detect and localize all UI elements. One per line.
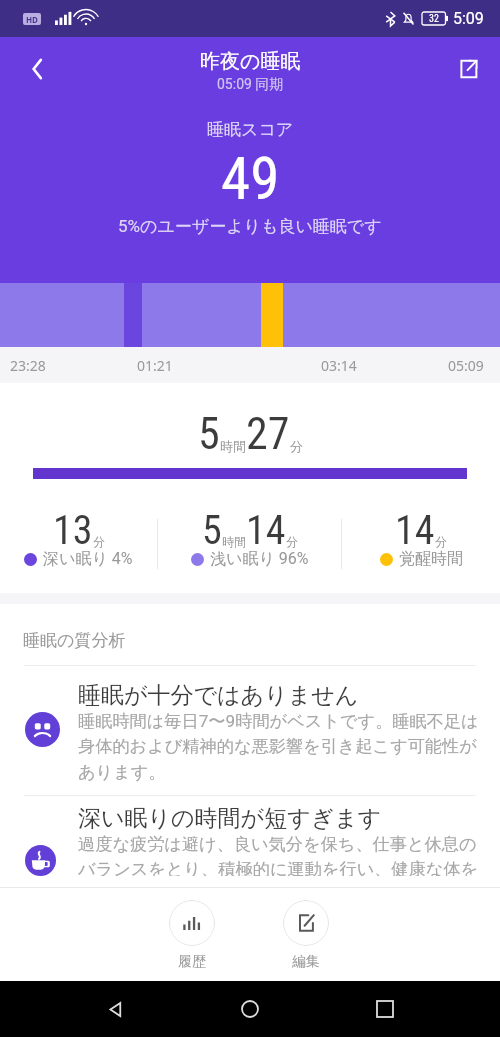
button[interactable]: 編集 bbox=[277, 888, 335, 977]
staticText: 05:09 同期 bbox=[217, 76, 284, 94]
staticText: 昨夜の睡眠 bbox=[200, 49, 301, 74]
staticText: 分 bbox=[286, 534, 298, 549]
staticText: 過度な疲労は避け、良い気分を保ち、仕事と休息の バランスをとり、積極的に運動を行… bbox=[78, 833, 479, 876]
button[interactable]: 睡眠が十分ではありません bbox=[0, 666, 500, 795]
button[interactable]: Home bbox=[230, 989, 270, 1029]
staticText: 23:28 bbox=[10, 356, 46, 375]
staticText: 27 bbox=[246, 408, 290, 460]
staticText: 分 bbox=[290, 438, 303, 454]
button[interactable]: Recents bbox=[365, 989, 405, 1029]
button[interactable]: Back bbox=[95, 989, 135, 1029]
staticText: 深い眠りの時間が短すぎます bbox=[78, 804, 382, 833]
staticText: 睡眠スコア bbox=[207, 119, 294, 140]
staticText: 13 bbox=[53, 507, 93, 554]
staticText: 浅い眠り 96% bbox=[210, 549, 309, 569]
staticText: 覚醒時間 bbox=[399, 549, 463, 569]
staticText: HD bbox=[26, 14, 38, 25]
staticText: 01:21 bbox=[137, 356, 173, 375]
staticText: 32 bbox=[429, 13, 439, 25]
staticText: 睡眠の質分析 bbox=[23, 630, 126, 651]
staticText: 5:09 bbox=[453, 9, 484, 28]
staticText: 49 bbox=[221, 144, 280, 213]
button[interactable]: 履歴 bbox=[163, 888, 221, 977]
staticText: 分 bbox=[93, 534, 105, 549]
staticText: 深い眠り 4% bbox=[43, 549, 133, 569]
staticText: 5 bbox=[202, 507, 222, 554]
staticText: 時間 bbox=[222, 534, 246, 549]
staticText: 睡眠時間は毎日7〜9時間がベストです。睡眠不足は 身体的および精神的な悪影響を引… bbox=[78, 710, 479, 784]
staticText: 03:14 bbox=[321, 356, 357, 375]
staticText: 14 bbox=[246, 507, 286, 554]
staticText: 睡眠が十分ではありません bbox=[78, 681, 359, 710]
button[interactable]: 深い眠りの時間が短すぎます bbox=[0, 796, 500, 887]
staticText: 時間 bbox=[220, 438, 246, 454]
staticText: 編集 bbox=[292, 953, 320, 971]
button[interactable]: Back bbox=[17, 49, 57, 89]
staticText: 05:09 bbox=[448, 356, 484, 375]
button[interactable]: Share bbox=[448, 49, 488, 89]
staticText: 履歴 bbox=[178, 953, 206, 971]
staticText: 14 bbox=[395, 507, 435, 554]
staticText: 5%のユーザーよりも良い睡眠です bbox=[118, 216, 382, 237]
staticText: 分 bbox=[435, 534, 447, 549]
staticText: 5 bbox=[198, 408, 220, 460]
